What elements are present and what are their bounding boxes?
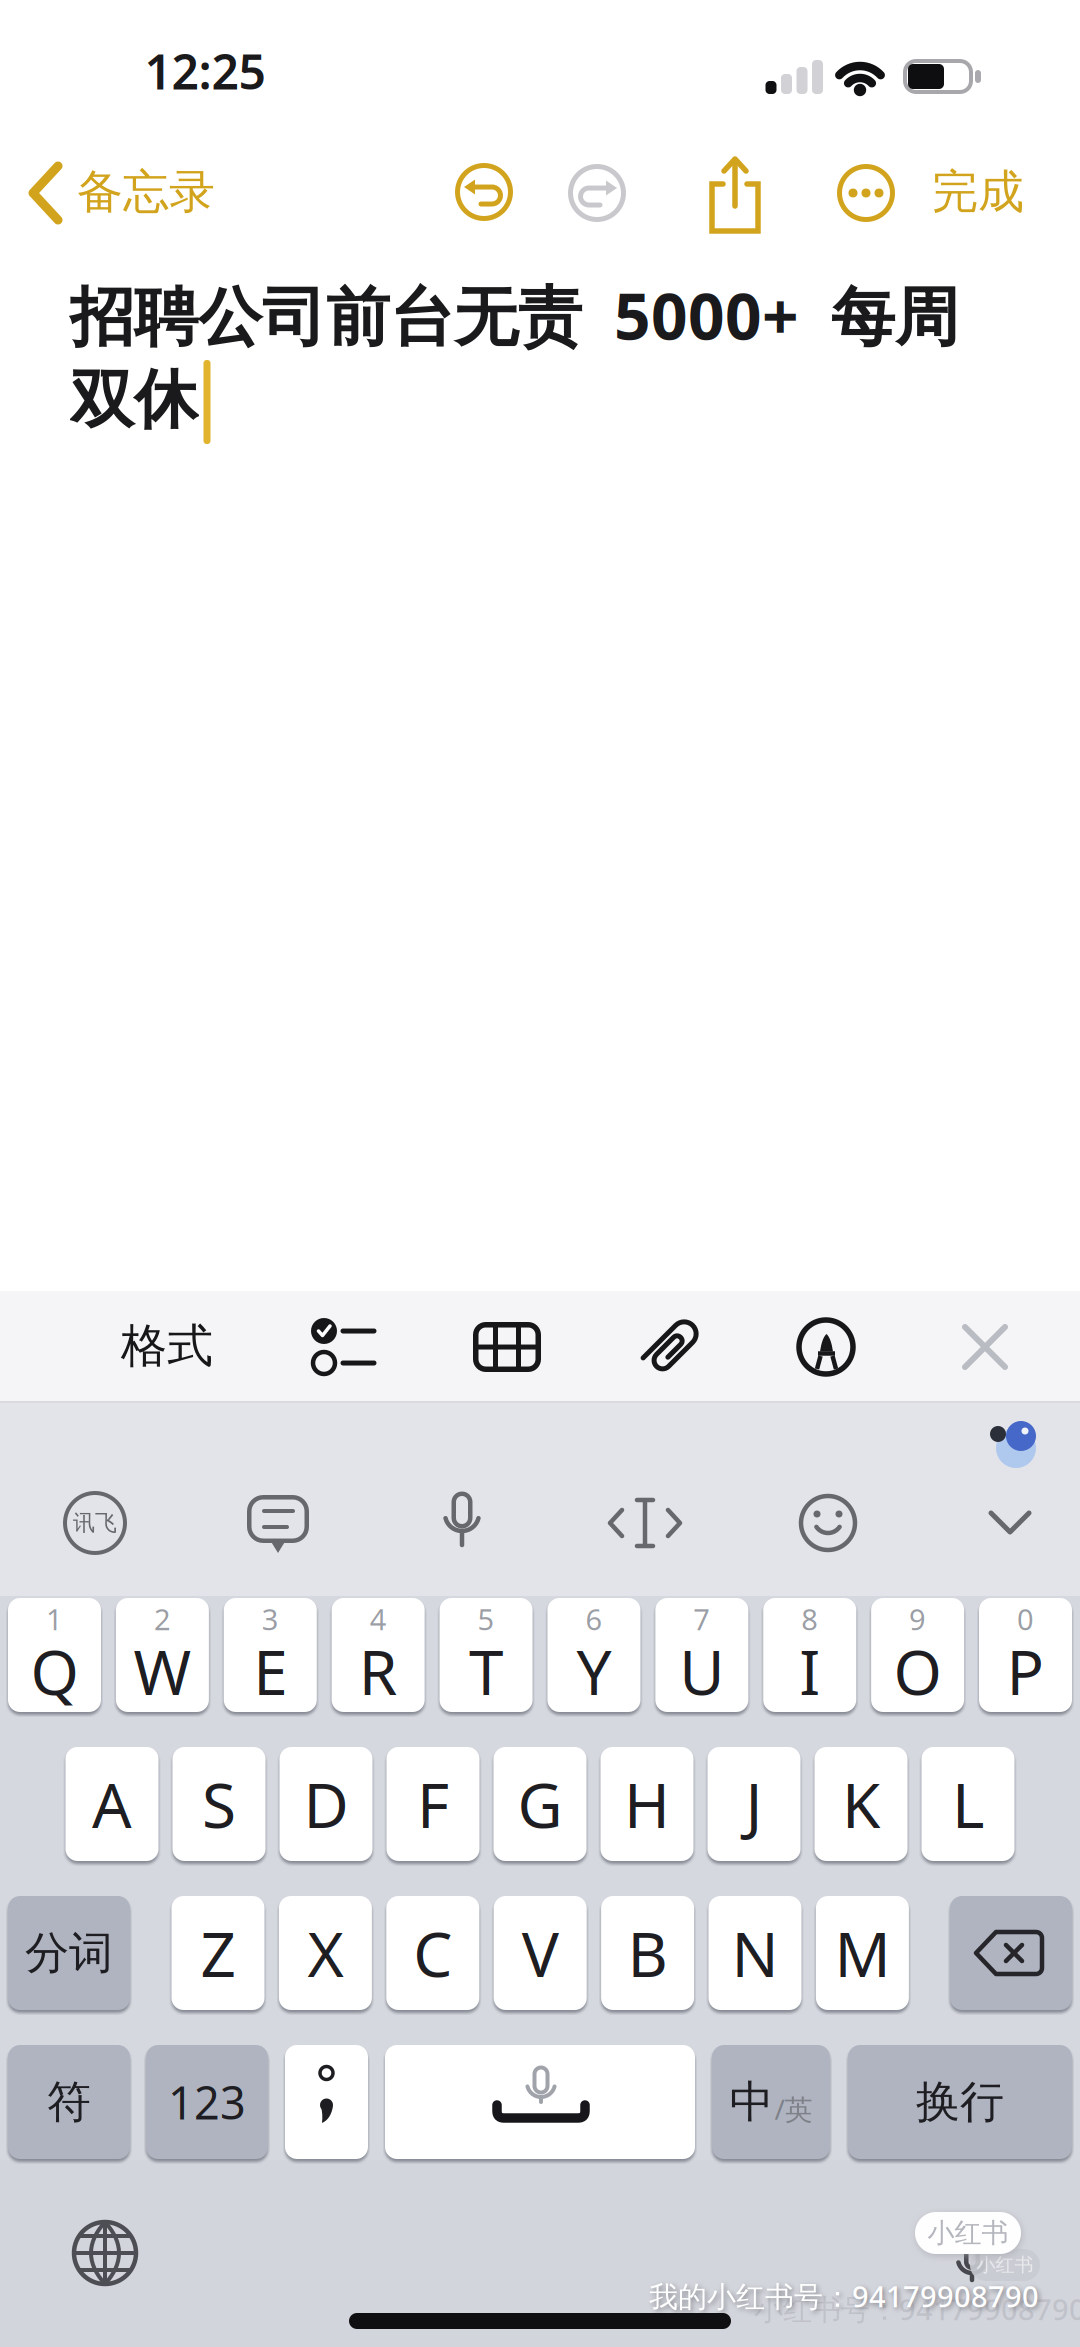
button[interactable] [786,1307,866,1387]
staticText: F [417,1762,449,1846]
button[interactable]: 1 [8,1598,101,1712]
staticText: X [307,1911,343,1995]
staticText: C [413,1911,452,1995]
button[interactable]: V [494,1896,587,2010]
button[interactable]: G [493,1747,586,1861]
staticText: 3 [262,1599,279,1639]
button[interactable] [932,2222,1012,2302]
button[interactable]: 4 [332,1598,425,1712]
staticText: 格式 [121,1317,213,1375]
staticText: P [1006,1629,1044,1713]
staticText: 我的小红书号：94179908790 [649,2276,1039,2316]
staticText: 123 [168,2071,246,2133]
staticText: 中 [729,2074,773,2130]
staticText: S [202,1762,236,1846]
button[interactable]: 2 [116,1598,209,1712]
button[interactable]: 完成 [903,150,1053,234]
staticText: D [303,1762,348,1846]
staticText: O [894,1629,942,1713]
button[interactable] [700,147,770,241]
button[interactable]: A [65,1747,158,1861]
staticText: M [834,1911,890,1995]
button[interactable]: B [601,1896,694,2010]
staticText: J [745,1762,762,1846]
button[interactable] [63,2211,147,2295]
button[interactable] [422,1483,502,1563]
staticText: 6 [585,1599,602,1639]
button[interactable] [788,1483,868,1563]
staticText: 讯飞 [73,1509,117,1537]
staticText: H [624,1762,670,1846]
staticText: 小红书 [927,2216,1008,2250]
button[interactable]: 7 [655,1598,748,1712]
button[interactable] [982,1411,1046,1471]
button[interactable] [834,161,898,225]
staticText: G [517,1762,562,1846]
staticText: 分词 [25,1925,113,1981]
staticText: 小红书 [976,2253,1033,2277]
staticText: 符 [47,2074,91,2130]
button[interactable] [630,1308,710,1388]
button[interactable]: J [707,1747,800,1861]
button[interactable]: 讯飞 [55,1483,135,1563]
staticText: 4 [370,1599,387,1639]
button[interactable]: D [279,1747,372,1861]
button[interactable] [462,1307,552,1387]
staticText: 完成 [932,163,1024,221]
staticText: T [469,1629,503,1713]
button[interactable]: N [708,1896,801,2010]
staticText: E [253,1629,287,1713]
button[interactable]: S [172,1747,265,1861]
button[interactable]: 备忘录 [6,145,242,241]
button[interactable] [950,1896,1072,2010]
button[interactable]: K [814,1747,907,1861]
button[interactable]: 中 [712,2045,830,2159]
staticText: K [842,1762,880,1846]
button[interactable] [452,160,516,224]
staticText: L [952,1762,984,1846]
staticText: W [133,1629,191,1713]
button[interactable]: H [600,1747,693,1861]
button[interactable] [385,2045,695,2159]
button[interactable]: 3 [224,1598,317,1712]
button[interactable]: F [386,1747,479,1861]
staticText: U [679,1629,724,1713]
button[interactable]: 9 [871,1598,964,1712]
button[interactable] [297,1307,387,1387]
button[interactable] [943,1305,1027,1389]
staticText: 5 [478,1599,495,1639]
button[interactable] [970,1483,1050,1563]
button[interactable] [565,161,629,225]
button[interactable] [285,2045,368,2159]
staticText: B [628,1911,668,1995]
staticText: 8 [801,1599,818,1639]
staticText: 12:25 [144,38,265,104]
button[interactable]: X [279,1896,372,2010]
staticText: A [92,1762,132,1846]
staticText: Q [30,1629,78,1713]
staticText: 双休 [70,360,198,440]
button[interactable]: 8 [763,1598,856,1712]
button[interactable] [603,1483,687,1563]
staticText: Z [200,1911,235,1995]
staticText: 备忘录 [77,163,215,221]
button[interactable]: 换行 [848,2045,1072,2159]
button[interactable]: 5 [440,1598,533,1712]
staticText: 招聘公司前台无责 5000+ 每周 [70,271,959,359]
button[interactable]: 123 [146,2045,268,2159]
staticText: Y [576,1629,611,1713]
button[interactable]: 分词 [8,1896,130,2010]
button[interactable]: 6 [547,1598,640,1712]
button[interactable]: C [386,1896,479,2010]
button[interactable]: M [816,1896,909,2010]
button[interactable]: L [921,1747,1014,1861]
button[interactable]: 格式 [92,1298,242,1393]
button[interactable]: 0 [979,1598,1072,1712]
staticText: 换行 [916,2074,1004,2130]
button[interactable] [238,1483,318,1563]
staticText: I [799,1629,820,1713]
button[interactable]: 符 [8,2045,130,2159]
staticText: V [522,1911,559,1995]
button[interactable]: Z [171,1896,264,2010]
staticText: /英 [774,2090,812,2128]
